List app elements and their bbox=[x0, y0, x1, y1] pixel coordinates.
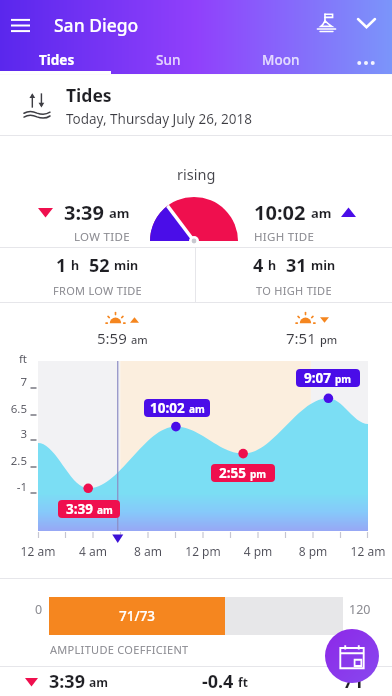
staticText: rising bbox=[177, 164, 216, 184]
staticText: 4 bbox=[253, 253, 264, 278]
staticText: pm bbox=[335, 372, 352, 386]
staticText: 71/73 bbox=[119, 607, 156, 625]
button[interactable]: 2:55 bbox=[211, 464, 275, 482]
staticText: 120 bbox=[349, 601, 371, 618]
staticText: Sun bbox=[156, 51, 181, 69]
button[interactable]: 7:51 bbox=[267, 310, 357, 348]
staticText: 1 bbox=[56, 253, 67, 278]
staticText: am bbox=[189, 402, 205, 416]
button[interactable]: Expand bbox=[350, 7, 382, 39]
staticText: 8 am bbox=[125, 543, 171, 559]
button[interactable]: 10:02 bbox=[144, 399, 210, 417]
staticText: h bbox=[268, 257, 277, 274]
button[interactable]: Beach conditions bbox=[310, 6, 342, 38]
staticText: -0.4 bbox=[202, 669, 234, 694]
button[interactable]: Open navigation menu bbox=[8, 13, 32, 37]
button[interactable]: 4 bbox=[196, 248, 392, 302]
button[interactable]: 5:59 bbox=[77, 310, 167, 348]
staticText: pm bbox=[320, 332, 338, 347]
staticText: Today, Thursday July 26, 2018 bbox=[66, 110, 252, 128]
staticText: 71 bbox=[343, 669, 364, 694]
staticText: Moon bbox=[262, 51, 300, 69]
staticText: am bbox=[97, 503, 113, 517]
staticText: 3:39 bbox=[66, 500, 93, 518]
staticText: 10:02 bbox=[150, 399, 185, 417]
staticText: -1 bbox=[0, 479, 27, 493]
staticText: min bbox=[311, 257, 336, 274]
button[interactable]: More options bbox=[344, 52, 388, 74]
button[interactable]: 3:39 bbox=[58, 500, 120, 518]
staticText: 9:07 bbox=[304, 369, 331, 387]
button[interactable]: Moon bbox=[233, 48, 329, 71]
staticText: TO HIGH TIDE bbox=[256, 283, 332, 298]
staticText: 4 pm bbox=[235, 543, 281, 559]
staticText: 12 am bbox=[15, 543, 61, 559]
staticText: 3 bbox=[0, 426, 27, 440]
staticText: h bbox=[71, 257, 80, 274]
staticText: 12 pm bbox=[180, 543, 226, 559]
staticText: min bbox=[114, 257, 139, 274]
button[interactable]: Open calendar bbox=[325, 629, 379, 683]
button[interactable]: 71/73 bbox=[49, 597, 343, 635]
staticText: LOW TIDE bbox=[74, 229, 130, 245]
button[interactable]: Sun bbox=[120, 48, 216, 71]
staticText: 3:39 bbox=[64, 199, 104, 226]
staticText: San Diego bbox=[54, 13, 139, 37]
staticText: ft bbox=[0, 351, 27, 365]
staticText: Tides bbox=[39, 51, 75, 69]
staticText: 2:55 bbox=[219, 464, 246, 482]
staticText: pm bbox=[250, 467, 267, 481]
staticText: am bbox=[109, 204, 130, 222]
staticText: 31 bbox=[286, 253, 307, 278]
staticText: 52 bbox=[89, 253, 110, 278]
button[interactable]: 1 bbox=[0, 248, 195, 302]
staticText: 0 bbox=[35, 601, 43, 618]
staticText: 10:02 bbox=[254, 199, 306, 226]
staticText: 12 am bbox=[345, 543, 391, 559]
staticText: 8 pm bbox=[290, 543, 336, 559]
button[interactable]: Tides bbox=[9, 48, 105, 71]
staticText: 2.5 bbox=[0, 453, 27, 467]
staticText: Tides bbox=[66, 83, 112, 107]
staticText: am bbox=[89, 674, 108, 690]
staticText: 5:59 bbox=[97, 328, 127, 348]
staticText: 3:39 bbox=[49, 669, 85, 694]
staticText: am bbox=[131, 332, 148, 347]
staticText: 6.5 bbox=[0, 401, 27, 415]
staticText: am bbox=[311, 204, 332, 222]
staticText: 7:51 bbox=[286, 328, 316, 348]
button[interactable]: 9:07 bbox=[296, 369, 360, 387]
staticText: FROM LOW TIDE bbox=[53, 283, 142, 298]
staticText: HIGH TIDE bbox=[254, 229, 315, 245]
staticText: AMPLITUDE COEFFICIENT bbox=[50, 642, 189, 657]
staticText: 7 bbox=[0, 374, 27, 388]
staticText: ft bbox=[238, 674, 248, 690]
staticText: 4 am bbox=[70, 543, 116, 559]
